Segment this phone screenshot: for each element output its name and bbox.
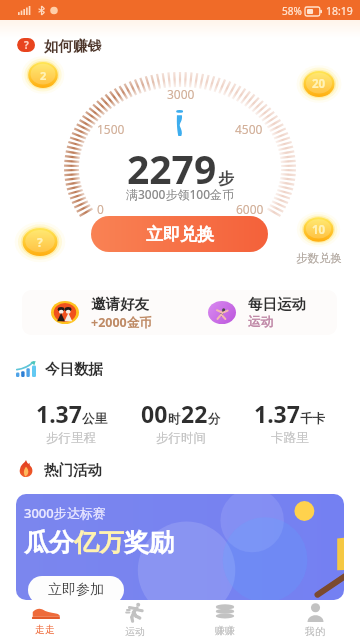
staticText: 2279 xyxy=(127,142,217,195)
staticText: 亿万 xyxy=(74,527,124,558)
button[interactable]: ? xyxy=(17,36,102,54)
staticText: +2000金币 xyxy=(91,314,152,331)
button[interactable]: 我的 xyxy=(270,600,360,640)
staticText: 22 xyxy=(181,398,208,429)
staticText: 2 xyxy=(40,68,47,83)
staticText: 步数兑换 xyxy=(296,251,342,265)
staticText: ? xyxy=(24,38,29,52)
staticText: 1500 xyxy=(97,121,125,137)
staticText: 1.37 xyxy=(36,398,82,429)
button[interactable]: 走走 xyxy=(0,600,90,640)
staticText: 每日运动 xyxy=(248,295,306,313)
staticText: 20 xyxy=(312,76,326,92)
staticText: 18:19 xyxy=(326,4,353,18)
staticText: 立即参加 xyxy=(48,581,104,599)
staticText: 赚赚 xyxy=(215,624,235,637)
staticText: 0 xyxy=(97,201,104,217)
button[interactable]: Coin 20 xyxy=(297,62,341,106)
staticText: 立即兑换 xyxy=(146,224,214,245)
staticText: 步 xyxy=(218,169,234,189)
staticText: 如何赚钱 xyxy=(44,37,102,54)
button[interactable]: 立即参加 xyxy=(28,576,124,600)
staticText: 步行时间 xyxy=(156,430,206,446)
staticText: 我的 xyxy=(305,625,325,638)
staticText: 千卡 xyxy=(300,411,325,427)
staticText: 步行里程 xyxy=(46,430,96,446)
staticText: 时 xyxy=(168,411,181,427)
staticText: 3000 xyxy=(167,86,195,102)
staticText: 分 xyxy=(208,411,221,427)
button[interactable]: 赚赚 xyxy=(180,600,270,640)
staticText: 6000 xyxy=(236,201,264,217)
staticText: 公里 xyxy=(82,411,107,427)
button[interactable]: 每日运动 xyxy=(182,290,337,335)
staticText: 运动 xyxy=(125,625,145,638)
button[interactable]: Coin ? xyxy=(15,217,65,267)
staticText: 邀请好友 xyxy=(91,295,149,313)
staticText: 4500 xyxy=(235,121,263,137)
button[interactable]: 运动 xyxy=(90,600,180,640)
staticText: 瓜分 xyxy=(24,527,74,558)
staticText: 走走 xyxy=(35,623,55,636)
button[interactable]: 立即兑换 xyxy=(91,216,268,252)
staticText: 00 xyxy=(141,398,168,429)
staticText: 奖励 xyxy=(124,527,174,558)
button[interactable]: 邀请好友 xyxy=(22,290,182,335)
staticText: ? xyxy=(37,234,43,250)
staticText: 58% xyxy=(282,4,302,18)
staticText: 1.37 xyxy=(254,398,300,429)
button[interactable]: Coin 10 xyxy=(297,208,340,251)
button[interactable]: 3000步达标赛 xyxy=(16,494,344,600)
staticText: 今日数据 xyxy=(45,360,103,378)
staticText: 10 xyxy=(312,222,326,238)
staticText: 热门活动 xyxy=(44,461,102,479)
staticText: 卡路里 xyxy=(271,430,309,446)
button[interactable]: Coin 2 xyxy=(22,54,64,96)
staticText: 满3000步领100金币 xyxy=(126,186,235,202)
staticText: 3000步达标赛 xyxy=(24,504,106,522)
staticText: 运动 xyxy=(248,314,273,330)
